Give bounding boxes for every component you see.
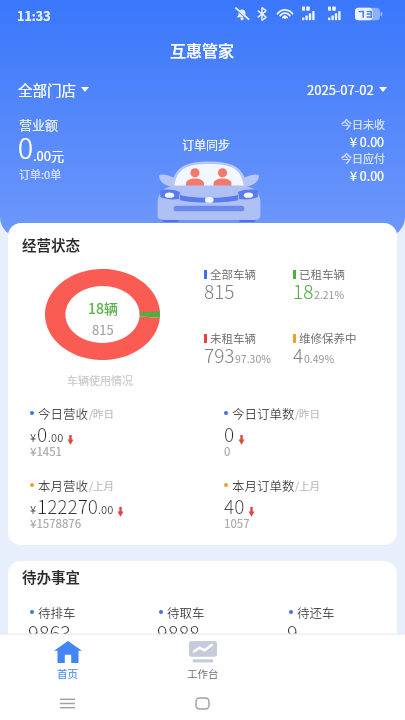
staticText: 2.21%: [314, 287, 345, 302]
staticText: 全部门店: [18, 79, 76, 100]
staticText: 122270: [37, 492, 98, 520]
staticText: 待办事宜: [22, 566, 80, 587]
staticText: 维修保养中: [299, 330, 357, 347]
staticText: 0: [224, 420, 235, 448]
button[interactable]: 首页: [0, 634, 135, 686]
staticText: ¥: [30, 429, 37, 445]
staticText: 4: [293, 341, 304, 369]
staticText: 9: [287, 618, 298, 647]
staticText: 首页: [57, 666, 78, 681]
staticText: 本月营收: [38, 476, 89, 494]
staticText: ¥: [30, 501, 37, 517]
staticText: ¥1578876: [30, 515, 82, 532]
staticText: /昨日: [89, 406, 115, 421]
staticText: 订单同步: [182, 136, 231, 153]
staticText: 2025-07-02: [307, 80, 374, 99]
staticText: 18辆: [88, 298, 118, 318]
staticText: 今日营收: [38, 404, 89, 422]
staticText: /上月: [295, 478, 321, 493]
button[interactable]: 全部门店: [18, 79, 89, 100]
staticText: 本月订单数: [232, 476, 295, 494]
staticText: /上月: [89, 478, 115, 493]
staticText: 经营状态: [22, 234, 80, 255]
staticText: 40: [224, 492, 245, 520]
staticText: 18: [293, 277, 314, 305]
staticText: 待还车: [297, 603, 335, 621]
staticText: 11:33: [17, 6, 51, 24]
staticText: 815: [204, 277, 235, 305]
staticText: 订单:0单: [19, 166, 62, 182]
button[interactable]: Menu: [0, 686, 135, 720]
staticText: ¥ 0.00: [350, 132, 385, 150]
staticText: 9863: [28, 618, 71, 647]
staticText: 9888: [157, 618, 200, 647]
staticText: 0: [18, 127, 33, 168]
staticText: 0: [224, 443, 231, 460]
staticText: 工作台: [187, 666, 219, 681]
staticText: 全部车辆: [210, 266, 256, 283]
staticText: ¥ 0.00: [350, 166, 385, 184]
staticText: 0: [37, 420, 48, 448]
staticText: 互惠管家: [170, 38, 235, 61]
staticText: 待取车: [167, 603, 205, 621]
staticText: 待排车: [38, 603, 76, 621]
button[interactable]: Home: [135, 686, 270, 720]
staticText: 营业额: [19, 115, 59, 134]
staticText: /昨日: [295, 406, 321, 421]
staticText: 已租车辆: [299, 266, 345, 283]
staticText: 793: [204, 341, 235, 369]
button[interactable]: 2025-07-02: [307, 80, 387, 99]
staticText: 未租车辆: [210, 330, 256, 347]
staticText: .00: [98, 501, 114, 517]
staticText: 1057: [224, 515, 250, 532]
staticText: 今日应付: [341, 150, 385, 166]
staticText: .00: [48, 429, 64, 445]
staticText: 97.30%: [235, 351, 271, 366]
staticText: 0.49%: [304, 351, 335, 366]
button[interactable]: 工作台: [135, 634, 270, 686]
staticText: 今日订单数: [232, 404, 295, 422]
staticText: ¥1451: [30, 443, 62, 460]
staticText: 815: [92, 320, 114, 339]
staticText: 今日未收: [341, 116, 385, 132]
staticText: .00元: [33, 146, 65, 165]
staticText: 车辆使用情况: [67, 372, 133, 388]
